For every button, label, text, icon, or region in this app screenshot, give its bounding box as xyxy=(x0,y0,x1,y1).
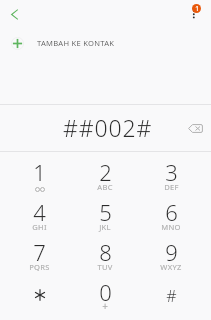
staticText: TAMBAH KE KONTAK xyxy=(37,38,115,48)
button[interactable]: 4 xyxy=(7,192,72,232)
button[interactable]: 2 xyxy=(72,152,138,192)
button[interactable]: 7 xyxy=(7,232,72,272)
staticText: MNO xyxy=(161,222,181,232)
staticText: WXYZ xyxy=(160,262,182,272)
staticText: GHI xyxy=(32,222,47,232)
staticText: TUV xyxy=(97,262,113,272)
staticText: ##002# xyxy=(63,112,153,143)
staticText: 1 xyxy=(195,4,199,13)
button[interactable]: 1 xyxy=(7,152,72,192)
button[interactable]: Back xyxy=(2,2,26,26)
staticText: 5 xyxy=(99,197,112,227)
staticText: 8 xyxy=(99,237,112,267)
staticText: + xyxy=(102,299,108,313)
staticText: 2 xyxy=(99,157,112,187)
staticText: 3 xyxy=(165,157,178,187)
staticText: 6 xyxy=(165,197,178,227)
button[interactable]: 0 xyxy=(72,272,138,312)
button[interactable]: 9 xyxy=(138,232,204,272)
staticText: ABC xyxy=(97,182,113,192)
staticText: PQRS xyxy=(29,262,50,272)
staticText: DEF xyxy=(164,182,179,192)
button[interactable]: 6 xyxy=(138,192,204,232)
staticText: 1 xyxy=(33,157,46,187)
button[interactable]: More options xyxy=(182,0,206,24)
button[interactable]: 8 xyxy=(72,232,138,272)
button[interactable]: 3 xyxy=(138,152,204,192)
button[interactable]: # xyxy=(138,272,204,312)
staticText: 0 xyxy=(99,277,112,307)
staticText: 4 xyxy=(33,197,46,227)
button[interactable] xyxy=(7,272,72,312)
button[interactable]: 5 xyxy=(72,192,138,232)
staticText: 9 xyxy=(165,237,178,267)
staticText: # xyxy=(166,285,177,307)
button[interactable]: Backspace xyxy=(183,116,207,140)
button[interactable]: TAMBAH KE KONTAK xyxy=(0,31,211,55)
staticText: JKL xyxy=(99,222,111,232)
staticText: 7 xyxy=(33,237,46,267)
